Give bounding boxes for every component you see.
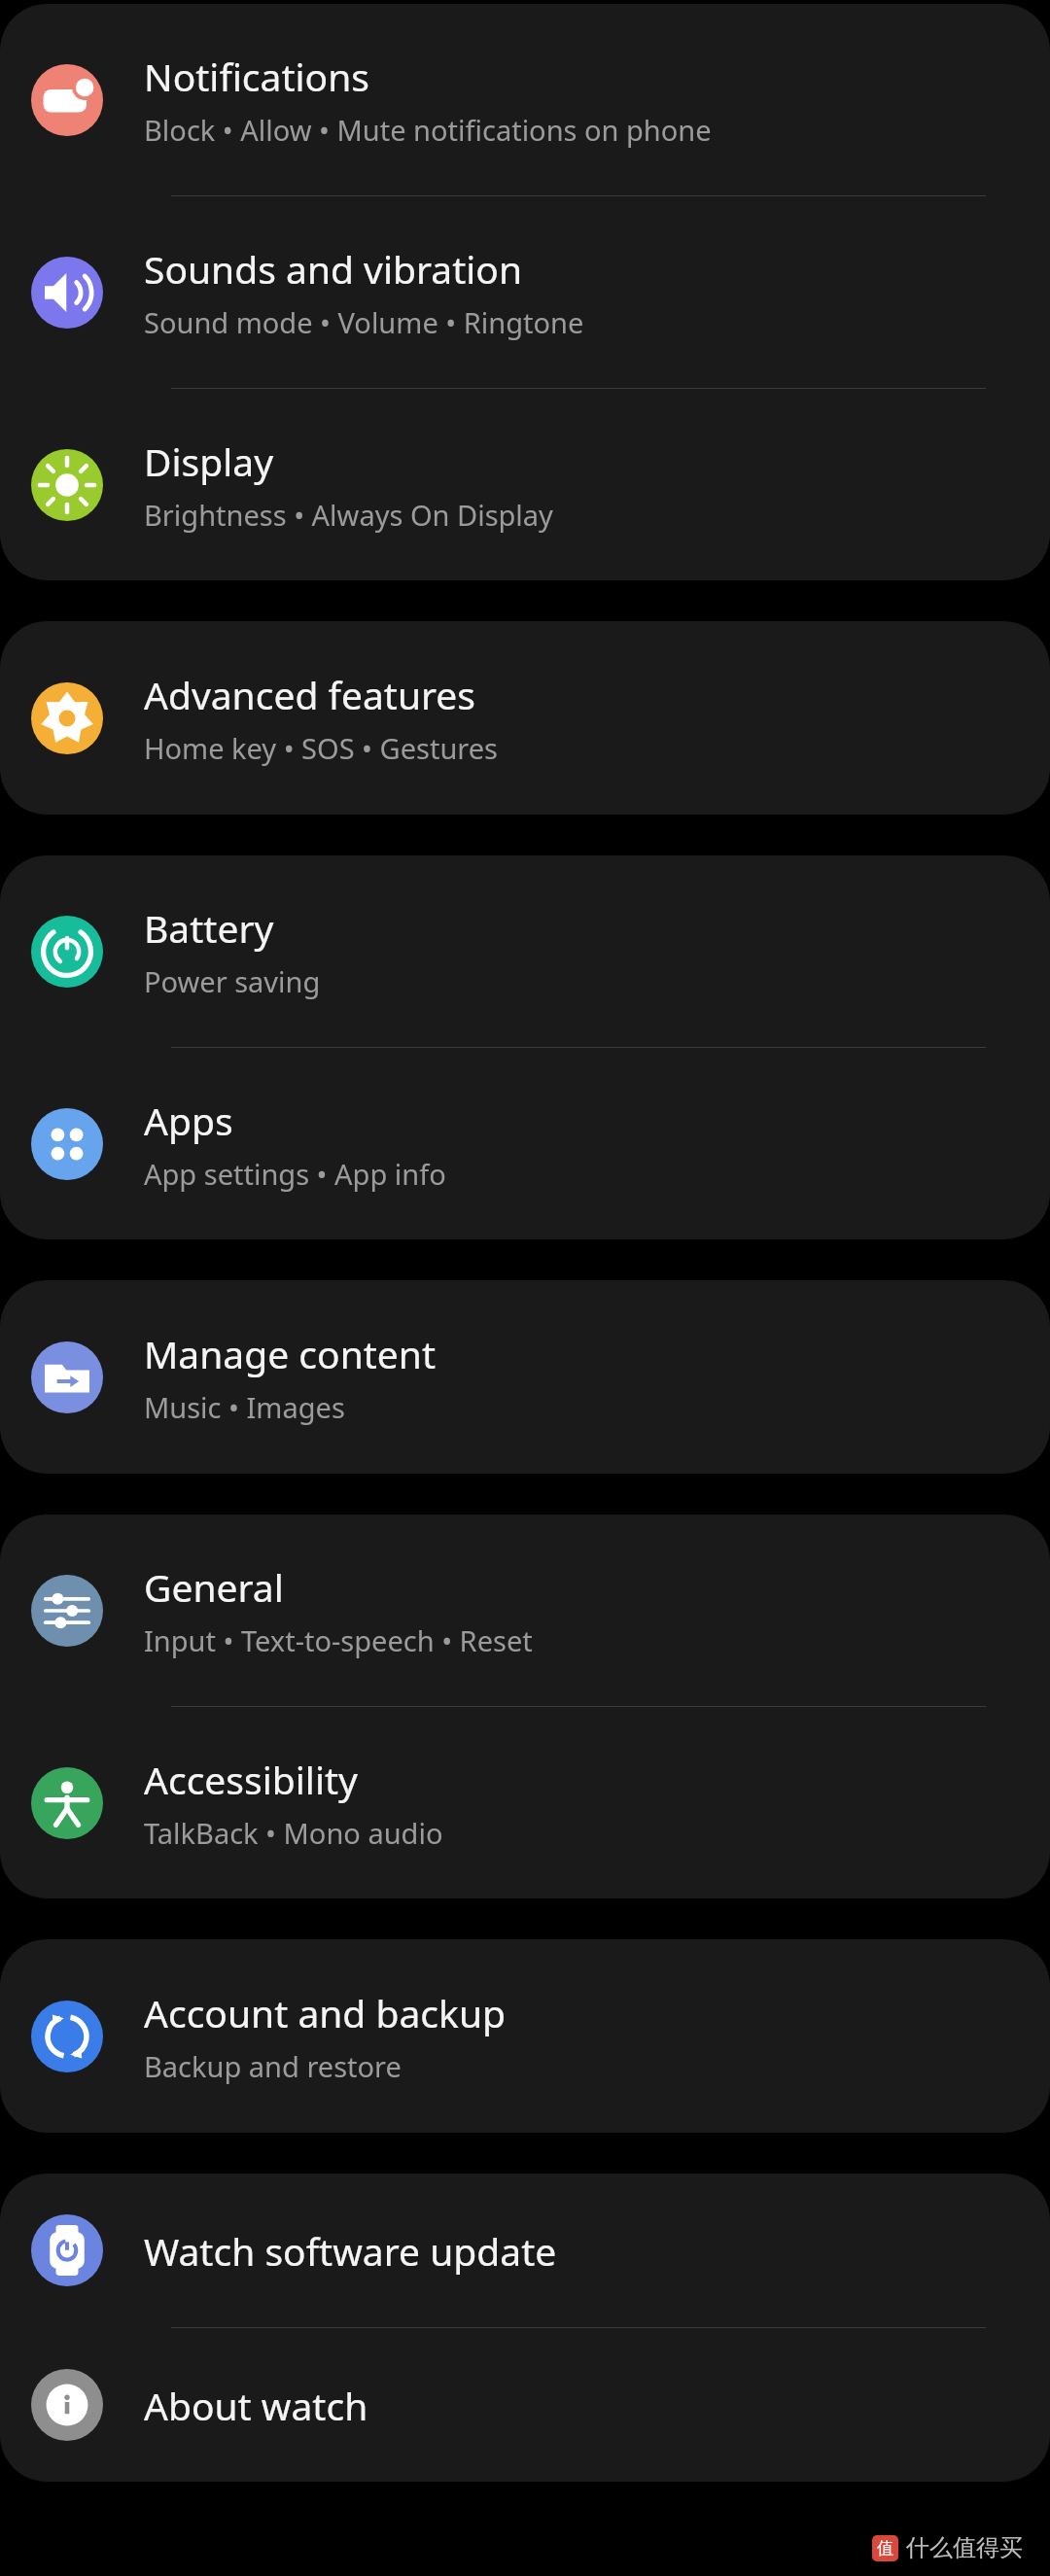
staticText: Advanced features xyxy=(144,669,476,720)
button[interactable]: Display xyxy=(0,389,1050,580)
button[interactable]: Notifications xyxy=(0,4,1050,195)
staticText: Music • Images xyxy=(144,1388,345,1426)
button[interactable]: Manage content xyxy=(0,1280,1050,1474)
staticText: Watch software update xyxy=(144,2225,557,2277)
staticText: Block • Allow • Mute notifications on ph… xyxy=(144,111,712,149)
staticText: 值 xyxy=(877,2538,893,2559)
button[interactable]: About watch xyxy=(0,2328,1050,2482)
button[interactable]: Accessibility xyxy=(0,1707,1050,1898)
staticText: Sounds and vibration xyxy=(144,243,523,295)
staticText: App settings • App info xyxy=(144,1155,446,1193)
staticText: Power saving xyxy=(144,962,321,1000)
staticText: Manage content xyxy=(144,1328,437,1379)
button[interactable]: Battery xyxy=(0,855,1050,1047)
staticText: Brightness • Always On Display xyxy=(144,496,553,534)
staticText: TalkBack • Mono audio xyxy=(144,1814,443,1852)
staticText: Backup and restore xyxy=(144,2047,402,2085)
staticText: About watch xyxy=(144,2380,368,2431)
button[interactable]: Advanced features xyxy=(0,621,1050,815)
button[interactable]: Sounds and vibration xyxy=(0,196,1050,388)
staticText: 什么值得买 xyxy=(906,2533,1023,2562)
staticText: Input • Text-to-speech • Reset xyxy=(144,1621,533,1659)
staticText: Sound mode • Volume • Ringtone xyxy=(144,303,584,341)
staticText: Display xyxy=(144,435,274,487)
staticText: Accessibility xyxy=(144,1754,358,1805)
staticText: Battery xyxy=(144,902,274,954)
staticText: Account and backup xyxy=(144,1987,506,2038)
button[interactable]: General xyxy=(0,1514,1050,1706)
button[interactable]: Apps xyxy=(0,1048,1050,1239)
staticText: Home key • SOS • Gestures xyxy=(144,729,498,767)
staticText: Apps xyxy=(144,1095,233,1146)
staticText: Notifications xyxy=(144,51,369,102)
button[interactable]: Account and backup xyxy=(0,1939,1050,2133)
button[interactable]: Watch software update xyxy=(0,2174,1050,2327)
staticText: General xyxy=(144,1561,284,1613)
